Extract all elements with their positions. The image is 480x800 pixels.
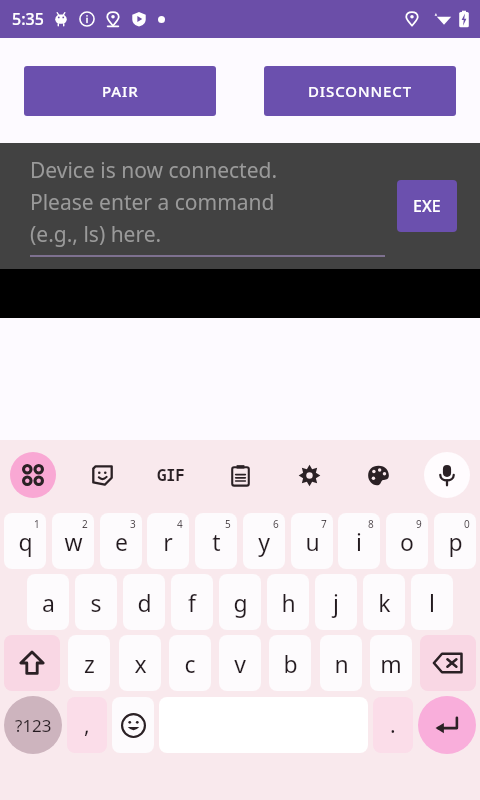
button[interactable]: Emoji bbox=[112, 697, 154, 753]
button[interactable]: e bbox=[100, 513, 142, 569]
staticText: . bbox=[390, 711, 396, 740]
button[interactable]: c bbox=[169, 635, 211, 691]
staticText: b bbox=[283, 648, 298, 679]
staticText: p bbox=[448, 526, 463, 557]
button[interactable]: Clipboard bbox=[217, 452, 263, 498]
button[interactable]: t bbox=[195, 513, 237, 569]
button[interactable]: PAIR bbox=[24, 66, 216, 116]
button[interactable]: u bbox=[291, 513, 333, 569]
button[interactable]: z bbox=[68, 635, 110, 691]
staticText: x bbox=[134, 648, 147, 679]
button[interactable]: Enter bbox=[418, 696, 476, 754]
staticText: 3 bbox=[130, 517, 136, 531]
button[interactable]: o bbox=[386, 513, 428, 569]
staticText: c bbox=[184, 648, 196, 679]
button[interactable]: DISCONNECT bbox=[264, 66, 456, 116]
button[interactable]: Themes bbox=[355, 452, 401, 498]
staticText: DISCONNECT bbox=[308, 81, 413, 101]
button[interactable]: a bbox=[27, 574, 69, 630]
staticText: j bbox=[333, 587, 339, 618]
staticText: q bbox=[18, 526, 33, 557]
staticText: v bbox=[234, 648, 246, 679]
staticText: 6 bbox=[273, 517, 279, 531]
staticText: 4 bbox=[177, 517, 183, 531]
staticText: g bbox=[233, 587, 248, 618]
button[interactable]: x bbox=[119, 635, 161, 691]
button[interactable]: r bbox=[147, 513, 189, 569]
staticText: n bbox=[334, 648, 349, 679]
button[interactable]: GIF bbox=[148, 452, 194, 498]
button[interactable]: n bbox=[320, 635, 362, 691]
button[interactable]: Backspace bbox=[420, 635, 476, 691]
staticText: m bbox=[380, 648, 402, 679]
button[interactable]: EXE bbox=[397, 180, 457, 232]
button[interactable]: , bbox=[67, 697, 107, 753]
button[interactable]: . bbox=[373, 697, 413, 753]
staticText: EXE bbox=[413, 195, 441, 217]
button[interactable]: l bbox=[411, 574, 453, 630]
button[interactable]: y bbox=[243, 513, 285, 569]
button[interactable]: Keyboard apps bbox=[10, 452, 56, 498]
button[interactable]: d bbox=[123, 574, 165, 630]
staticText: 0 bbox=[464, 517, 470, 531]
staticText: f bbox=[188, 587, 196, 618]
staticText: PAIR bbox=[102, 81, 139, 101]
staticText: d bbox=[137, 587, 152, 618]
staticText: , bbox=[84, 711, 90, 740]
button[interactable]: ?123 bbox=[4, 696, 62, 754]
staticText: 2 bbox=[82, 517, 88, 531]
button[interactable]: Settings bbox=[286, 452, 332, 498]
button[interactable]: Voice input bbox=[424, 452, 470, 498]
staticText: e bbox=[115, 526, 128, 557]
button[interactable]: s bbox=[75, 574, 117, 630]
staticText: 1 bbox=[34, 517, 40, 531]
button[interactable]: w bbox=[52, 513, 94, 569]
button[interactable]: b bbox=[269, 635, 311, 691]
staticText: l bbox=[429, 587, 435, 618]
staticText: GIF bbox=[157, 464, 185, 486]
staticText: ?123 bbox=[15, 714, 52, 737]
staticText: t bbox=[212, 526, 221, 557]
staticText: z bbox=[84, 648, 95, 679]
staticText: 7 bbox=[321, 517, 327, 531]
staticText: i bbox=[356, 526, 362, 557]
button[interactable]: j bbox=[315, 574, 357, 630]
staticText: 8 bbox=[368, 517, 374, 531]
staticText: s bbox=[90, 587, 102, 618]
staticText: h bbox=[281, 587, 296, 618]
staticText: r bbox=[163, 526, 173, 557]
staticText: k bbox=[378, 587, 391, 618]
button[interactable]: Shift bbox=[4, 635, 60, 691]
staticText: w bbox=[64, 526, 83, 557]
staticText: a bbox=[42, 587, 55, 618]
button[interactable]: q bbox=[4, 513, 46, 569]
button[interactable]: p bbox=[434, 513, 476, 569]
staticText: o bbox=[400, 526, 414, 557]
button[interactable]: g bbox=[219, 574, 261, 630]
button[interactable]: v bbox=[219, 635, 261, 691]
button[interactable]: f bbox=[171, 574, 213, 630]
button[interactable]: k bbox=[363, 574, 405, 630]
button[interactable]: h bbox=[267, 574, 309, 630]
staticText: y bbox=[258, 526, 270, 557]
staticText: 5 bbox=[225, 517, 231, 531]
button[interactable]: i bbox=[338, 513, 380, 569]
button[interactable]: Stickers bbox=[79, 452, 125, 498]
staticText: Device is now connected. Please enter a … bbox=[30, 156, 278, 248]
button[interactable]: m bbox=[370, 635, 412, 691]
staticText: 9 bbox=[416, 517, 422, 531]
staticText: 5:35 bbox=[12, 8, 44, 30]
staticText: u bbox=[305, 526, 320, 557]
